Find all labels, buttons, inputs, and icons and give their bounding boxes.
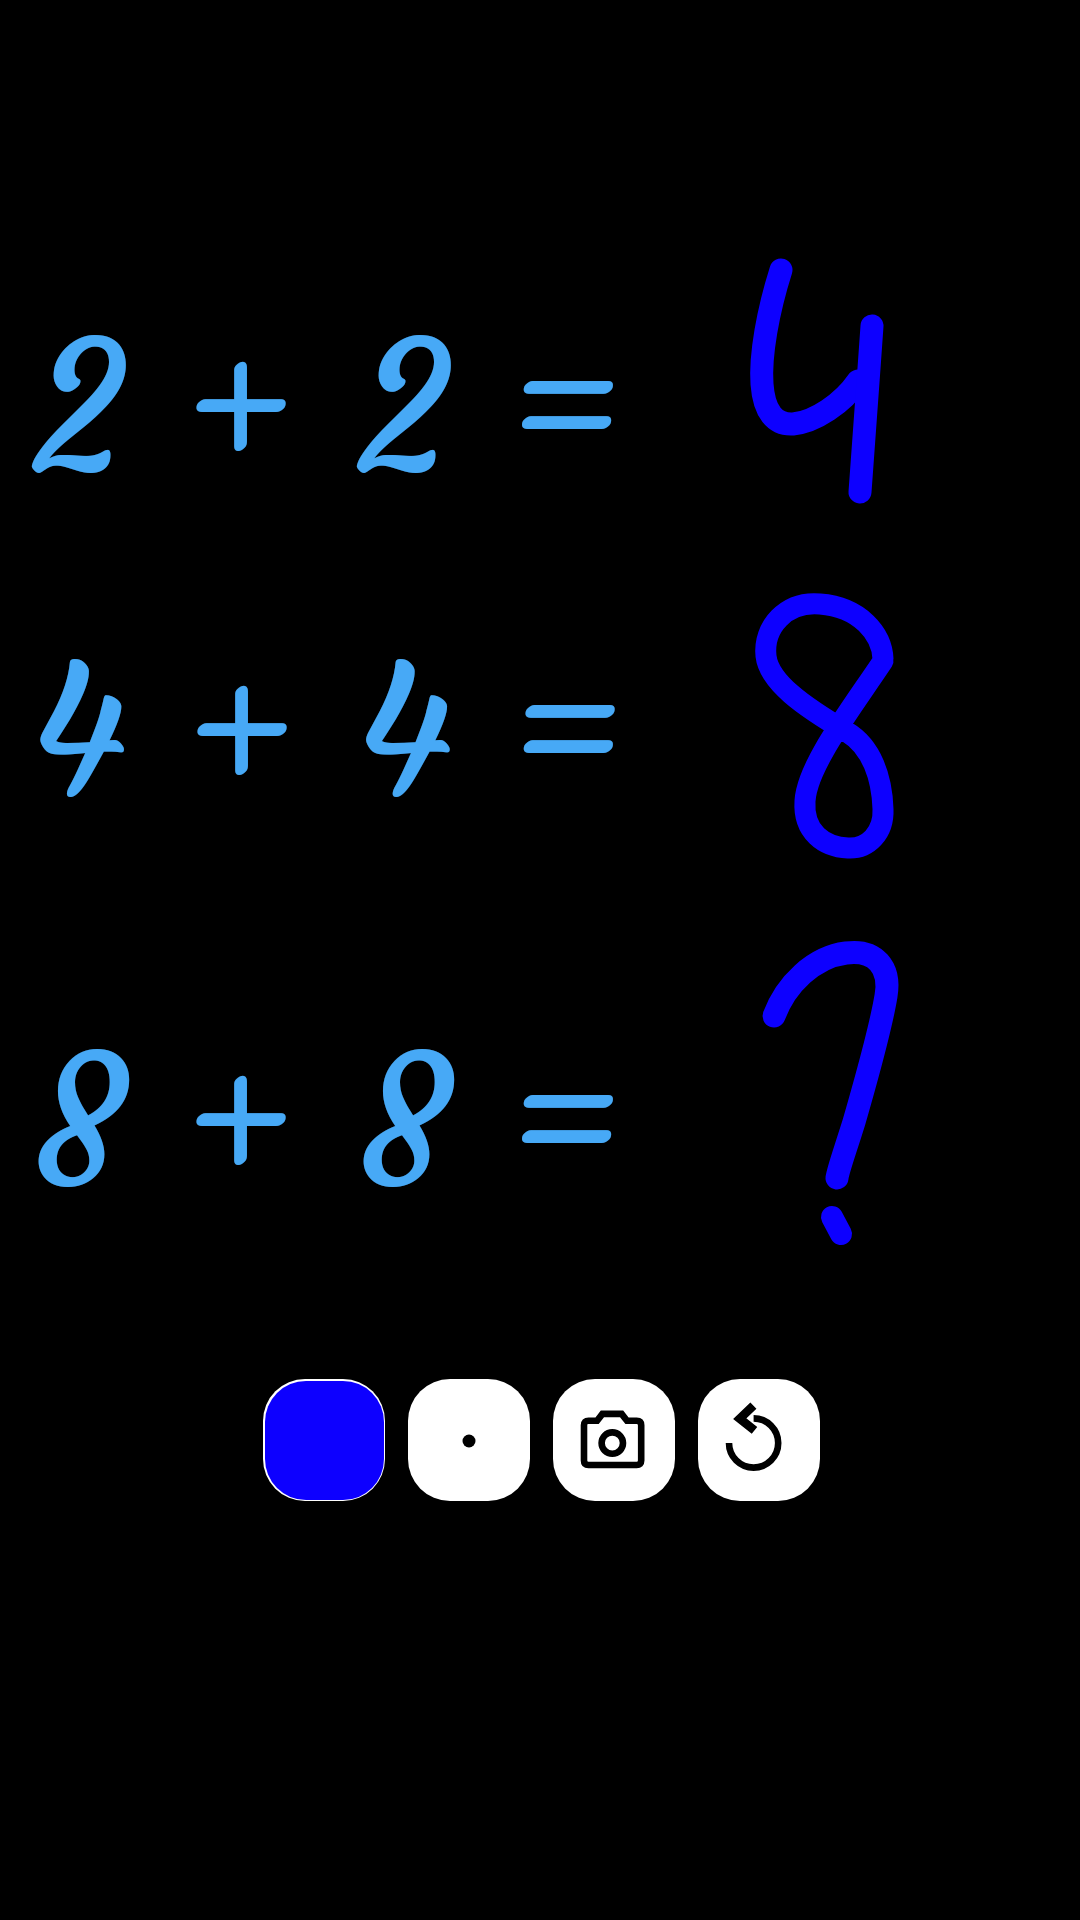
button[interactable]: Stroke size (408, 1379, 530, 1501)
staticText: 8 + 8 = (30, 1010, 623, 1235)
button[interactable]: Undo (698, 1379, 820, 1501)
button[interactable]: Camera (553, 1379, 675, 1501)
staticText: 4 + 4 = (30, 620, 625, 845)
button[interactable]: Pen colour (263, 1379, 385, 1501)
staticText: 2 + 2 = (30, 296, 623, 521)
